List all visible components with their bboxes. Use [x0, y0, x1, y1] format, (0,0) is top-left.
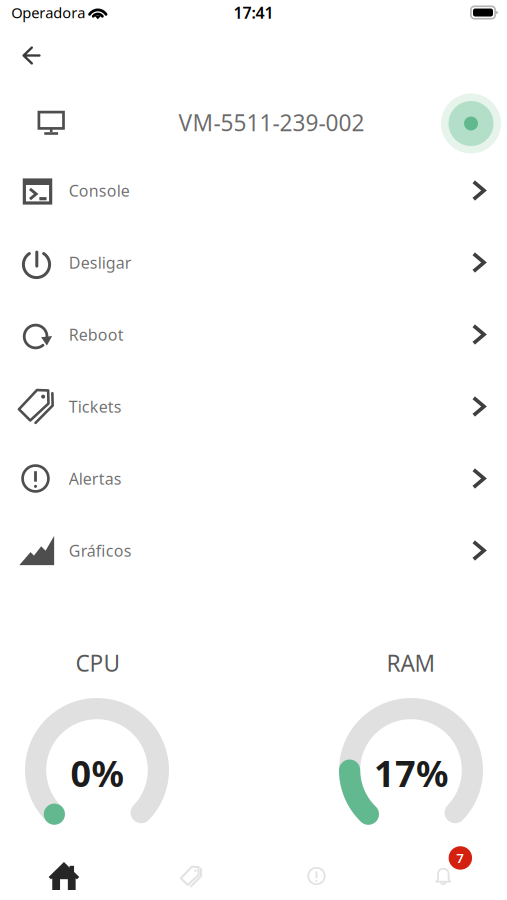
staticText: Desligar [69, 252, 132, 273]
staticText: 0% [70, 749, 123, 797]
button[interactable]: Alerts [0, 0, 126, 56]
staticText: 17:41 [233, 2, 273, 23]
button[interactable]: Tickets [0, 0, 507, 72]
button[interactable]: Desligar [0, 0, 507, 72]
button[interactable]: Notifications [0, 0, 126, 56]
staticText: Tickets [69, 396, 122, 417]
button[interactable]: Alertas [0, 0, 507, 72]
button[interactable]: Gráficos [0, 0, 507, 72]
staticText: CPU [75, 648, 120, 678]
staticText: 7 [456, 849, 464, 867]
staticText: RAM [386, 648, 435, 678]
button[interactable]: Tickets [0, 0, 126, 56]
staticText: 17% [374, 749, 448, 797]
button[interactable]: Reboot [0, 0, 507, 72]
button[interactable]: Console [0, 0, 507, 72]
staticText: Console [69, 180, 130, 201]
staticText: Gráficos [69, 540, 132, 561]
staticText: Operadora [11, 3, 85, 22]
staticText: Reboot [69, 324, 124, 345]
staticText: VM-5511-239-002 [178, 107, 364, 137]
button[interactable]: Back [0, 0, 54, 44]
button[interactable]: Home [0, 0, 126, 56]
staticText: Alertas [69, 468, 122, 489]
